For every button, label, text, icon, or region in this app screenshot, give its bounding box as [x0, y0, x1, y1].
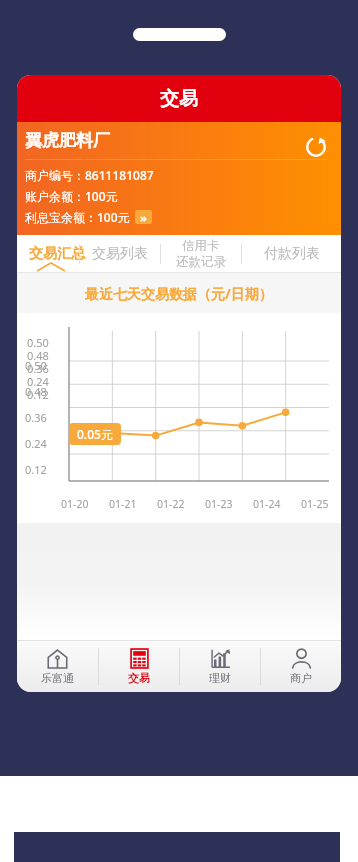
button[interactable]: 交易列表 — [80, 235, 160, 272]
staticText: 利息宝余额：100元 — [25, 209, 130, 225]
staticText: 商户编号：8611181087 — [25, 167, 154, 183]
staticText: 01-21 — [109, 497, 137, 511]
button[interactable]: 查看利息宝 — [135, 210, 152, 224]
staticText: 0.36 — [25, 410, 47, 425]
staticText: 0.05元 — [77, 426, 113, 442]
staticText: 商户 — [290, 671, 312, 685]
staticText: 0.24 — [27, 374, 49, 389]
staticText: 交易列表 — [92, 245, 148, 263]
button[interactable]: 信用卡 — [161, 235, 241, 272]
button[interactable]: 商户 — [261, 641, 341, 692]
button[interactable]: 刷新 — [303, 134, 329, 160]
staticText: 信用卡 — [182, 238, 220, 254]
staticText: 付款列表 — [264, 245, 320, 263]
button[interactable]: 交易 — [99, 641, 179, 692]
button[interactable]: 交易汇总 — [17, 235, 79, 272]
staticText: 理财 — [209, 671, 231, 685]
staticText: 0.12 — [27, 387, 49, 402]
staticText: 交易 — [160, 87, 198, 111]
staticText: 0.50 — [27, 335, 49, 350]
staticText: 01-25 — [301, 497, 329, 511]
staticText: 0.24 — [25, 436, 47, 451]
staticText: 账户余额：100元 — [25, 188, 118, 204]
staticText: » — [140, 210, 147, 224]
staticText: 0.36 — [27, 361, 49, 376]
staticText: 01-24 — [253, 497, 281, 511]
staticText: 0.48 — [27, 348, 49, 363]
staticText: 0.48 — [25, 384, 47, 399]
button[interactable]: 付款列表 — [242, 235, 341, 272]
button[interactable]: 理财 — [180, 641, 260, 692]
staticText: 最近七天交易数据（元/日期） — [85, 284, 273, 303]
staticText: 交易 — [128, 671, 150, 685]
staticText: 01-23 — [205, 497, 233, 511]
staticText: 0.12 — [25, 462, 47, 477]
staticText: 翼虎肥料厂 — [25, 130, 110, 151]
staticText: 01-20 — [61, 497, 89, 511]
staticText: 还款记录 — [176, 254, 226, 270]
staticText: 01-22 — [157, 497, 185, 511]
button[interactable]: 乐富通 — [17, 641, 98, 692]
staticText: 0.50 — [25, 358, 47, 373]
staticText: 交易汇总 — [29, 245, 85, 263]
staticText: 乐富通 — [41, 671, 74, 685]
